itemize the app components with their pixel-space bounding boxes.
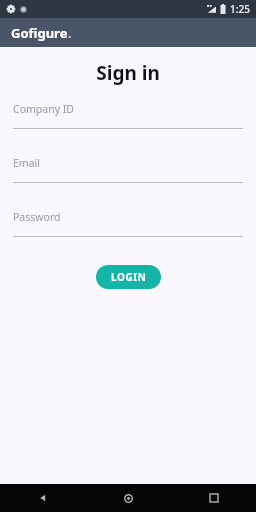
staticText: Gofigure (11, 24, 68, 42)
button[interactable]: Password (13, 210, 243, 237)
button[interactable]: Recent apps (171, 484, 256, 512)
staticText: LOGIN (111, 270, 147, 284)
staticText: 1:25 (230, 2, 250, 16)
staticText: Sign in (0, 60, 256, 86)
staticText: Password (13, 210, 61, 224)
button[interactable]: LOGIN (96, 265, 161, 289)
staticText: Email (13, 156, 40, 170)
button[interactable]: Company ID (13, 102, 243, 129)
staticText: Company ID (13, 102, 74, 116)
button[interactable]: Home (86, 484, 171, 512)
staticText: . (68, 24, 72, 42)
button[interactable]: Back (0, 484, 86, 512)
button[interactable]: Email (13, 156, 243, 183)
